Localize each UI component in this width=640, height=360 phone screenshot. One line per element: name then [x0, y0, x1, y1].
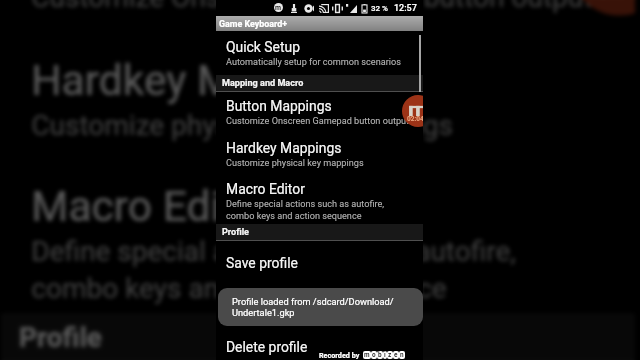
staticText: Recorded by — [319, 351, 360, 359]
button[interactable]: Macro Editor — [216, 176, 423, 223]
staticText: o — [372, 351, 376, 359]
staticText: Game Keyboard+ — [219, 19, 288, 29]
staticText: Define special actions such as autofire, — [226, 199, 385, 210]
staticText: m — [364, 351, 370, 359]
staticText: Mapping and Macro — [222, 78, 304, 89]
button[interactable]: Macro Editor — [1, 166, 635, 310]
button[interactable]: Save profile — [216, 250, 423, 275]
staticText: e — [394, 351, 398, 359]
staticText: Hardkey Mappings — [31, 56, 387, 105]
staticText: combo keys and action sequence — [226, 211, 362, 222]
button[interactable]: Load profile — [216, 292, 423, 317]
button[interactable]: Button Mappings — [1, 0, 635, 22]
staticText: Macro Editor — [31, 181, 273, 230]
staticText: Macro Editor — [226, 181, 305, 197]
staticText: z — [388, 351, 392, 359]
staticText: 02:04 — [407, 115, 423, 123]
staticText: Define special actions such as autofire, — [31, 236, 519, 270]
staticText: b — [378, 351, 382, 359]
staticText: Customize Onscreen Gamepad button output — [31, 0, 595, 16]
staticText: combo keys and action sequence — [31, 273, 448, 307]
staticText: m — [275, 4, 282, 12]
button[interactable]: Quick Setup — [216, 34, 423, 70]
staticText: Load profile — [226, 297, 299, 313]
staticText: 12:57 — [394, 3, 417, 14]
staticText: Customize physical key mappings — [31, 111, 454, 144]
staticText: Delete profile — [226, 339, 308, 355]
staticText: Save profile — [226, 255, 298, 271]
staticText: Profile loaded from /sdcard/Download/ — [232, 296, 394, 307]
staticText: Profile — [222, 227, 250, 238]
button[interactable]: Button Mappings — [216, 93, 423, 129]
staticText: Quick Setup — [226, 39, 300, 55]
staticText: Profile — [19, 322, 105, 356]
staticText: Undertale1.gkp — [232, 307, 295, 318]
staticText: 32 % — [371, 4, 388, 13]
staticText: Customize Onscreen Gamepad button output — [226, 116, 410, 127]
staticText: i — [384, 351, 386, 359]
button[interactable]: Profile — [216, 224, 423, 241]
staticText: n — [400, 351, 404, 359]
staticText: Automatically setup for common scenarios — [226, 57, 401, 68]
other: Mobizen recording watermark — [571, 0, 635, 16]
staticText: Customize physical key mappings — [226, 158, 364, 169]
button[interactable]: Delete profile — [216, 334, 423, 359]
staticText: 02:04 — [586, 0, 635, 3]
button[interactable]: Hardkey Mappings — [216, 135, 423, 171]
button[interactable]: Hardkey Mappings — [1, 40, 635, 151]
staticText: Hardkey Mappings — [226, 140, 342, 156]
other: Mobizen recording watermark — [402, 95, 423, 127]
staticText: Button Mappings — [226, 98, 332, 114]
button[interactable]: Game Keyboard+ — [216, 16, 423, 31]
button[interactable]: Profile — [1, 313, 635, 360]
button[interactable]: Mapping and Macro — [216, 75, 423, 92]
